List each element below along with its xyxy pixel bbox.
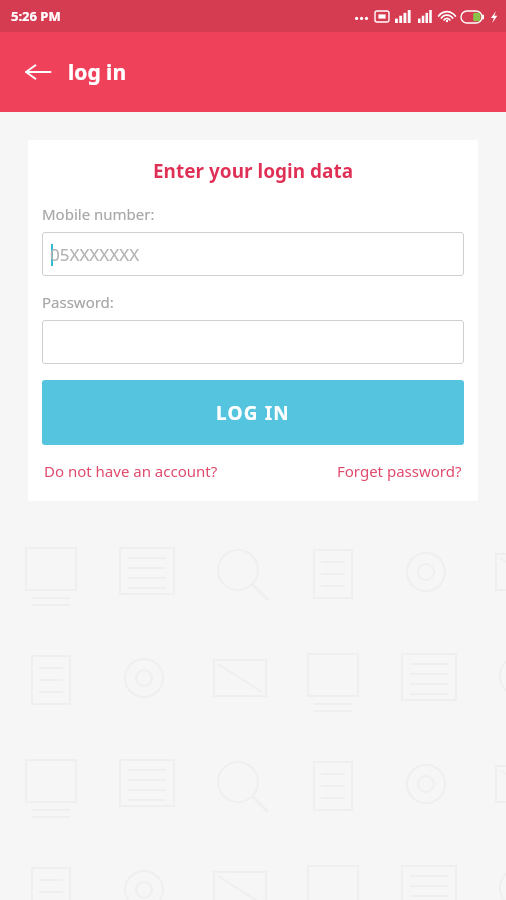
button[interactable]: Do not have an account?: [42, 459, 220, 483]
staticText: LOG IN: [216, 400, 291, 426]
button[interactable]: Mobile number field: [42, 232, 464, 276]
staticText: Do not have an account?: [44, 461, 218, 481]
staticText: 05XXXXXXX: [50, 243, 140, 266]
button[interactable]: Forget password?: [335, 459, 464, 483]
button[interactable]: Back: [14, 48, 62, 96]
staticText: 5:26 PM: [11, 7, 61, 25]
staticText: Forget password?: [337, 461, 462, 481]
staticText: Password:: [42, 292, 114, 312]
staticText: Enter your login data: [42, 158, 464, 184]
staticText: log in: [68, 58, 127, 87]
button[interactable]: Password field: [42, 320, 464, 364]
button[interactable]: LOG IN: [42, 380, 464, 445]
staticText: Mobile number:: [42, 204, 155, 224]
